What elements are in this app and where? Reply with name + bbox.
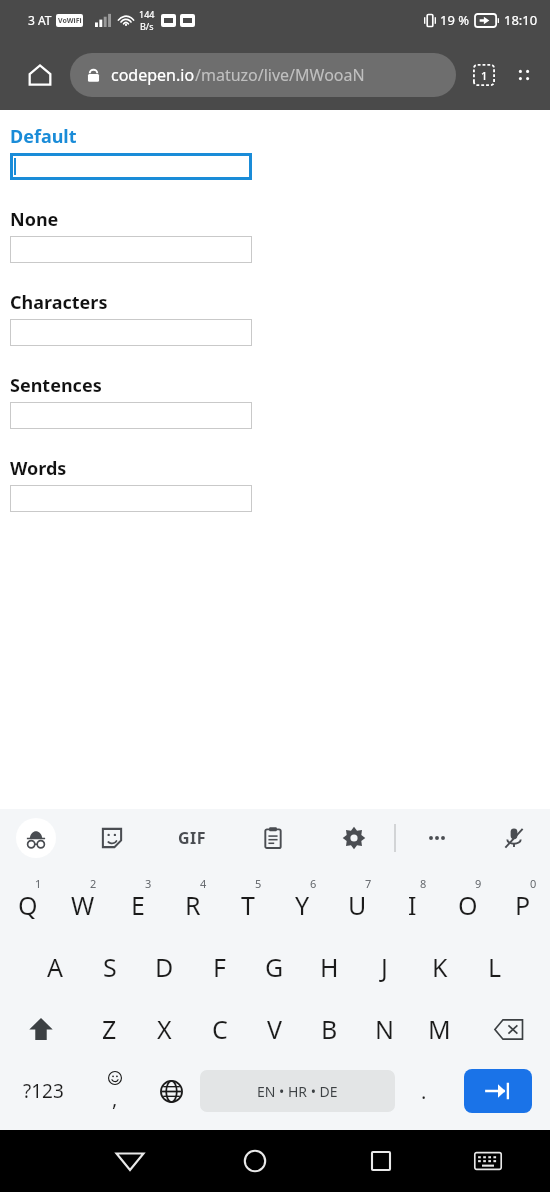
staticText: X bbox=[157, 1012, 172, 1046]
button[interactable] bbox=[10, 485, 252, 512]
staticText: . bbox=[421, 1078, 427, 1105]
button[interactable]: Recents bbox=[349, 1130, 412, 1192]
button[interactable]: Stickers bbox=[72, 809, 152, 866]
button[interactable]: F bbox=[192, 936, 247, 998]
staticText: B bbox=[321, 1012, 338, 1046]
button[interactable]: Hide keyboard bbox=[456, 1130, 519, 1192]
button[interactable]: Y bbox=[275, 874, 330, 936]
staticText: 9 bbox=[475, 876, 482, 891]
button[interactable]: K bbox=[412, 936, 467, 998]
button[interactable]: codepen.io bbox=[70, 53, 456, 97]
button[interactable]: O bbox=[440, 874, 495, 936]
button[interactable]: E bbox=[110, 874, 165, 936]
staticText: 7 bbox=[365, 876, 372, 891]
button[interactable]: Z bbox=[82, 998, 137, 1060]
button[interactable]: A bbox=[27, 936, 82, 998]
staticText: 0 bbox=[530, 876, 537, 891]
staticText: W bbox=[71, 888, 95, 922]
staticText: K bbox=[432, 950, 448, 984]
staticText: None bbox=[10, 207, 59, 232]
staticText: H bbox=[320, 950, 339, 984]
staticText: VoWiFi bbox=[58, 16, 82, 26]
button[interactable]: L bbox=[467, 936, 522, 998]
staticText: 1 bbox=[481, 68, 488, 83]
button[interactable]: J bbox=[357, 936, 412, 998]
staticText: Z bbox=[102, 1012, 117, 1046]
button[interactable]: Voice input off bbox=[477, 809, 550, 866]
staticText: GIF bbox=[178, 827, 207, 849]
button[interactable]: H bbox=[302, 936, 357, 998]
button[interactable]: ?123 bbox=[0, 1060, 86, 1122]
button[interactable]: Settings bbox=[313, 809, 394, 866]
button[interactable]: X bbox=[137, 998, 192, 1060]
staticText: D bbox=[155, 950, 174, 984]
staticText: Default bbox=[10, 124, 77, 149]
staticText: 2 bbox=[90, 876, 97, 891]
button[interactable]: Shift bbox=[0, 998, 82, 1060]
button[interactable]: W bbox=[55, 874, 110, 936]
staticText: /matuzo/live/MWooaN bbox=[195, 64, 365, 86]
staticText: , bbox=[112, 1085, 118, 1112]
staticText: N bbox=[375, 1012, 395, 1046]
button[interactable]: P bbox=[495, 874, 550, 936]
button[interactable]: S bbox=[82, 936, 137, 998]
staticText: 144 bbox=[139, 8, 155, 20]
button[interactable]: R bbox=[165, 874, 220, 936]
staticText: Characters bbox=[10, 290, 108, 315]
staticText: V bbox=[267, 1012, 283, 1046]
staticText: E bbox=[131, 888, 145, 922]
staticText: 18:10 bbox=[504, 11, 538, 29]
button[interactable]: Home bbox=[223, 1130, 286, 1192]
button[interactable]: GIF bbox=[152, 809, 232, 866]
staticText: Sentences bbox=[10, 373, 102, 398]
button[interactable]: Change language bbox=[143, 1060, 200, 1122]
button[interactable]: I bbox=[385, 874, 440, 936]
staticText: ?123 bbox=[23, 1078, 64, 1104]
button[interactable]: Home bbox=[20, 55, 60, 95]
button[interactable]: B bbox=[302, 998, 357, 1060]
staticText: J bbox=[381, 950, 388, 984]
staticText: Words bbox=[10, 456, 67, 481]
button[interactable]: More options bbox=[504, 55, 544, 95]
button[interactable]: G bbox=[247, 936, 302, 998]
button[interactable]: Incognito keyboard bbox=[0, 809, 72, 866]
button[interactable]: Backspace bbox=[467, 998, 550, 1060]
button[interactable] bbox=[13, 156, 249, 177]
staticText: 4 bbox=[200, 876, 207, 891]
button[interactable]: C bbox=[192, 998, 247, 1060]
button[interactable]: V bbox=[247, 998, 302, 1060]
button[interactable]: N bbox=[357, 998, 412, 1060]
staticText: Q bbox=[18, 888, 38, 922]
staticText: 3 AT bbox=[28, 12, 52, 28]
button[interactable]: Back bbox=[99, 1130, 161, 1192]
button[interactable]: D bbox=[137, 936, 192, 998]
staticText: 5 bbox=[255, 876, 262, 891]
staticText: F bbox=[213, 950, 226, 984]
button[interactable]: Next bbox=[464, 1069, 532, 1113]
staticText: S bbox=[103, 950, 117, 984]
staticText: 8 bbox=[420, 876, 427, 891]
button[interactable]: More bbox=[396, 809, 477, 866]
staticText: Y bbox=[295, 888, 310, 922]
button[interactable] bbox=[10, 319, 252, 346]
staticText: codepen.io bbox=[111, 64, 195, 86]
staticText: B/s bbox=[140, 20, 154, 32]
button[interactable]: Clipboard bbox=[232, 809, 313, 866]
button[interactable]: . bbox=[395, 1060, 452, 1122]
button[interactable] bbox=[10, 236, 252, 263]
button[interactable] bbox=[10, 402, 252, 429]
staticText: U bbox=[348, 888, 367, 922]
button[interactable]: EN • HR • DE bbox=[200, 1070, 395, 1112]
staticText: T bbox=[241, 888, 255, 922]
staticText: O bbox=[458, 888, 478, 922]
button[interactable]: Q bbox=[0, 874, 55, 936]
staticText: EN • HR • DE bbox=[257, 1082, 338, 1101]
staticText: 3 bbox=[145, 876, 152, 891]
button[interactable]: Tabs, 1 open bbox=[464, 55, 504, 95]
staticText: M bbox=[428, 1012, 451, 1046]
button[interactable]: T bbox=[220, 874, 275, 936]
staticText: 6 bbox=[310, 876, 317, 891]
button[interactable]: M bbox=[412, 998, 467, 1060]
button[interactable]: Emoji and comma bbox=[86, 1060, 143, 1122]
button[interactable]: U bbox=[330, 874, 385, 936]
